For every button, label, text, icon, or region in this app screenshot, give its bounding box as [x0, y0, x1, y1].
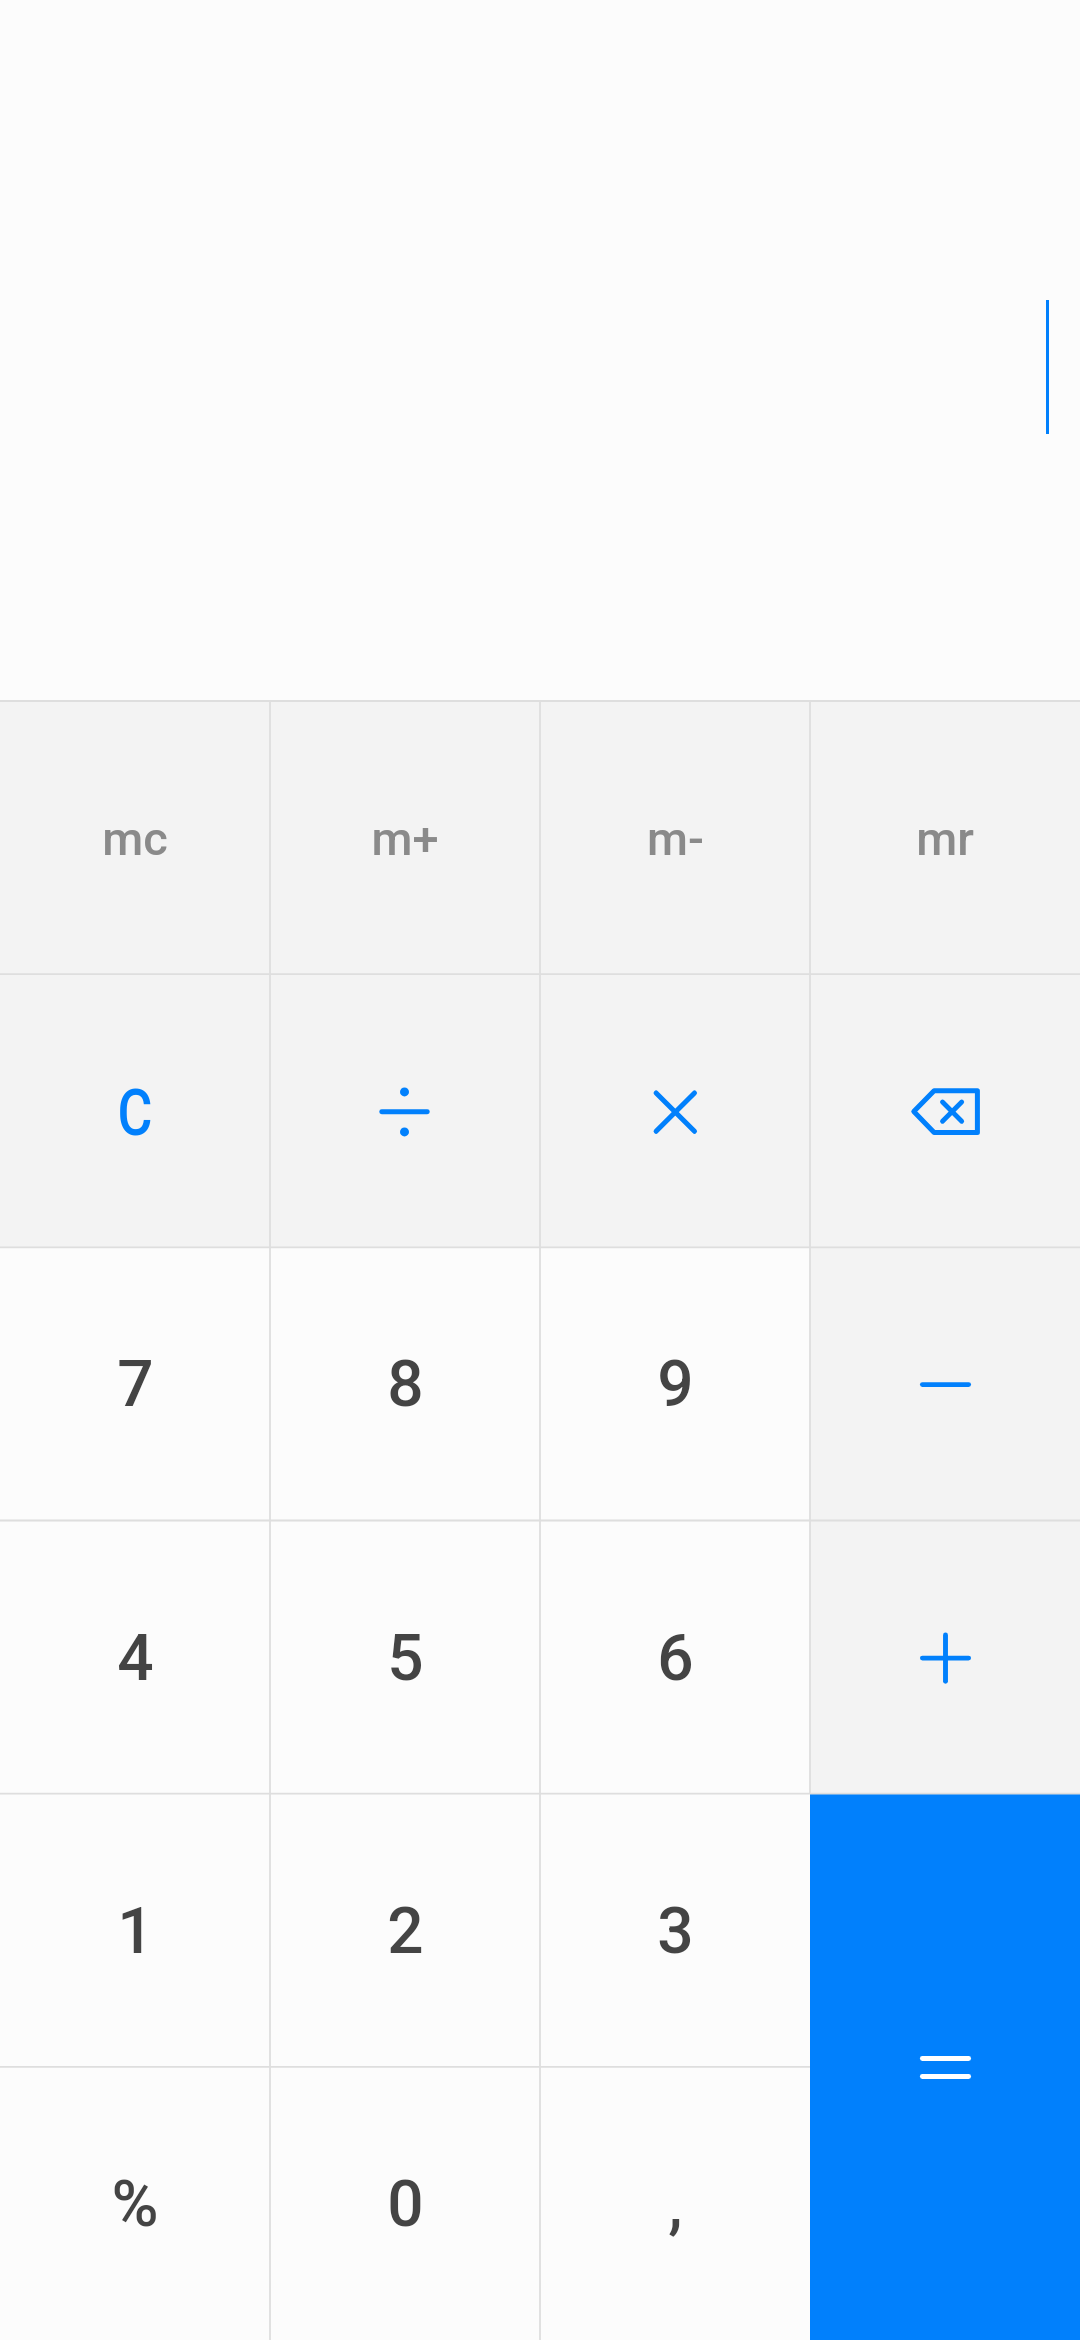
button[interactable]: mc [0, 701, 270, 974]
button[interactable]: 4 [0, 1521, 270, 1794]
staticText: 2 [387, 1894, 424, 1969]
button[interactable]: C [0, 974, 270, 1247]
button[interactable]: 2 [270, 1794, 540, 2067]
button[interactable]: m+ [270, 701, 540, 974]
button[interactable]: Plus [810, 1521, 1080, 1794]
staticText: m+ [371, 811, 439, 866]
staticText: mr [916, 811, 974, 866]
staticText: 9 [657, 1347, 694, 1422]
staticText: 1 [117, 1894, 154, 1969]
button[interactable]: 0 [270, 2067, 540, 2340]
button[interactable]: Backspace [810, 974, 1080, 1247]
button[interactable]: Multiply [540, 974, 810, 1247]
button[interactable]: 1 [0, 1794, 270, 2067]
staticText: 0 [387, 2167, 424, 2242]
staticText: 7 [117, 1347, 154, 1422]
button[interactable]: m- [540, 701, 810, 974]
button[interactable]: Minus [810, 1247, 1080, 1520]
button[interactable]: 8 [270, 1247, 540, 1520]
staticText: 8 [387, 1347, 424, 1422]
button[interactable]: , [540, 2067, 810, 2340]
button[interactable]: 9 [540, 1247, 810, 1520]
button[interactable]: mr [810, 701, 1080, 974]
staticText: 6 [657, 1621, 694, 1696]
staticText: 3 [657, 1894, 694, 1969]
button[interactable]: Divide [270, 974, 540, 1247]
staticText: mc [102, 811, 168, 866]
button[interactable]: 6 [540, 1521, 810, 1794]
button[interactable]: 5 [270, 1521, 540, 1794]
button[interactable]: % [0, 2067, 270, 2340]
button[interactable]: 3 [540, 1794, 810, 2067]
staticText: 5 [387, 1621, 424, 1696]
staticText: C [117, 1076, 153, 1151]
staticText: 4 [117, 1621, 154, 1696]
staticText: , [668, 2167, 683, 2242]
button[interactable]: Equals [810, 1794, 1080, 2340]
staticText: % [111, 2167, 159, 2242]
button[interactable]: 7 [0, 1247, 270, 1520]
staticText: m- [647, 811, 704, 866]
